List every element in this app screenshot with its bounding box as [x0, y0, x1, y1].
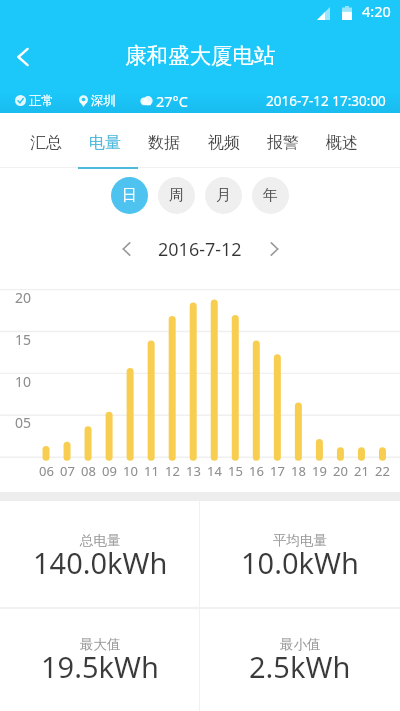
button[interactable]: 总电量 — [0, 501, 200, 607]
staticText: 概述 — [326, 133, 358, 153]
staticText: 17 — [270, 462, 285, 480]
button[interactable]: 最大值 — [0, 605, 200, 711]
staticText: 报警 — [267, 133, 299, 153]
button[interactable]: 最小值 — [200, 605, 400, 711]
staticText: 05 — [15, 413, 32, 432]
staticText: 15 — [15, 330, 32, 349]
staticText: 20 — [15, 288, 32, 307]
staticText: 13 — [186, 462, 201, 480]
staticText: 周 — [169, 186, 184, 205]
button[interactable]: 汇总 — [22, 113, 70, 168]
staticText: 09 — [102, 462, 117, 480]
staticText: 10 — [123, 462, 138, 480]
staticText: 电量 — [89, 133, 121, 153]
staticText: 汇总 — [30, 133, 62, 153]
button[interactable]: Back — [0, 32, 48, 82]
staticText: 4:20 — [362, 1, 391, 21]
button[interactable]: 报警 — [259, 113, 307, 168]
staticText: 总电量 — [80, 532, 121, 549]
staticText: 14 — [207, 462, 222, 480]
staticText: 19 — [312, 462, 327, 480]
staticText: 最大值 — [80, 636, 121, 653]
staticText: 正常 — [29, 93, 54, 109]
staticText: 日 — [122, 186, 137, 205]
staticText: 27°C — [156, 91, 188, 111]
staticText: 20 — [333, 462, 348, 480]
staticText: 12 — [165, 462, 180, 480]
staticText: 16 — [249, 462, 264, 480]
button[interactable]: Previous day — [108, 231, 144, 267]
staticText: 06 — [39, 462, 54, 480]
button[interactable]: Next day — [256, 231, 292, 267]
staticText: 15 — [228, 462, 243, 480]
staticText: 深圳 — [91, 93, 116, 109]
button[interactable]: 数据 — [140, 113, 188, 168]
staticText: 140.0kWh — [33, 543, 168, 582]
button[interactable]: 月 — [205, 177, 242, 214]
button[interactable]: 概述 — [318, 113, 366, 168]
staticText: 最小值 — [280, 636, 321, 653]
staticText: 视频 — [208, 133, 240, 153]
staticText: 2.5kWh — [249, 647, 351, 686]
staticText: 月 — [216, 186, 231, 205]
staticText: 数据 — [148, 133, 180, 153]
button[interactable]: 电量 — [81, 113, 129, 168]
staticText: 2016-7-12 — [158, 237, 242, 262]
button[interactable]: 年 — [252, 177, 289, 214]
staticText: 康和盛大厦电站 — [125, 42, 276, 69]
staticText: 22 — [375, 462, 390, 480]
staticText: 10.0kWh — [241, 543, 359, 582]
staticText: 2016-7-12 17:30:00 — [266, 92, 386, 110]
staticText: 21 — [354, 462, 369, 480]
staticText: 08 — [81, 462, 96, 480]
staticText: 07 — [60, 462, 75, 480]
staticText: 平均电量 — [273, 532, 327, 549]
button[interactable]: 视频 — [200, 113, 248, 168]
button[interactable]: 周 — [158, 177, 195, 214]
staticText: 19.5kWh — [41, 647, 159, 686]
button[interactable]: 日 — [111, 177, 148, 214]
staticText: 18 — [291, 462, 306, 480]
staticText: 10 — [15, 372, 32, 391]
button[interactable]: 平均电量 — [200, 501, 400, 607]
staticText: 11 — [144, 462, 159, 480]
staticText: 年 — [263, 186, 278, 205]
